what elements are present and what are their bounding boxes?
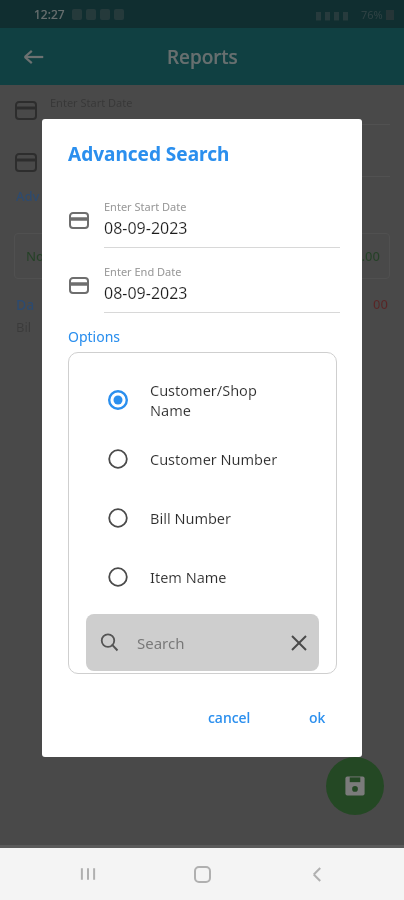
button[interactable]: Back [290,848,344,900]
staticText: Adv [16,187,40,205]
staticText: Advanced Search [68,141,230,167]
button[interactable]: Back [12,35,56,79]
button[interactable]: Clear search [279,623,319,663]
staticText: 08-09-2023 [104,217,188,239]
staticText: Item Name [150,567,227,587]
staticText: Search [137,633,279,653]
staticText: Reports [167,44,238,70]
button[interactable]: Search [86,614,319,671]
button[interactable]: Enter End Date [68,264,340,313]
staticText: No [26,247,48,265]
staticText: ok [309,708,326,727]
staticText: Da [16,295,35,314]
staticText: 00 [373,295,388,313]
button[interactable]: Enter Start Date [68,199,340,248]
staticText: Enter End Date [104,264,182,279]
button[interactable]: Bill Number [68,488,337,547]
staticText: 76% [361,7,383,22]
staticText: Options [68,327,121,346]
staticText: 1.00 [354,247,380,265]
button[interactable]: Recents [61,848,115,900]
staticText: Enter Start Date [104,199,187,214]
staticText: 08-09-2023 [104,282,188,304]
other: Search [100,633,119,652]
staticText: Customer Number [150,449,278,469]
button[interactable]: Home [175,848,229,900]
staticText: Bil [16,318,32,336]
staticText: Enter Start Date [50,95,133,110]
staticText: 12:27 [34,6,65,22]
staticText: Enter End Date [50,147,128,162]
button[interactable]: Customer/Shop Name [68,370,337,429]
button[interactable]: Customer Number [68,429,337,488]
button[interactable]: Item Name [68,547,337,606]
staticText: cancel [208,708,251,727]
button[interactable]: Save [326,757,384,815]
staticText: Bill Number [150,508,232,528]
staticText: Customer/Shop Name [150,380,257,420]
button[interactable]: cancel [196,700,263,735]
button[interactable]: ok [297,700,338,735]
